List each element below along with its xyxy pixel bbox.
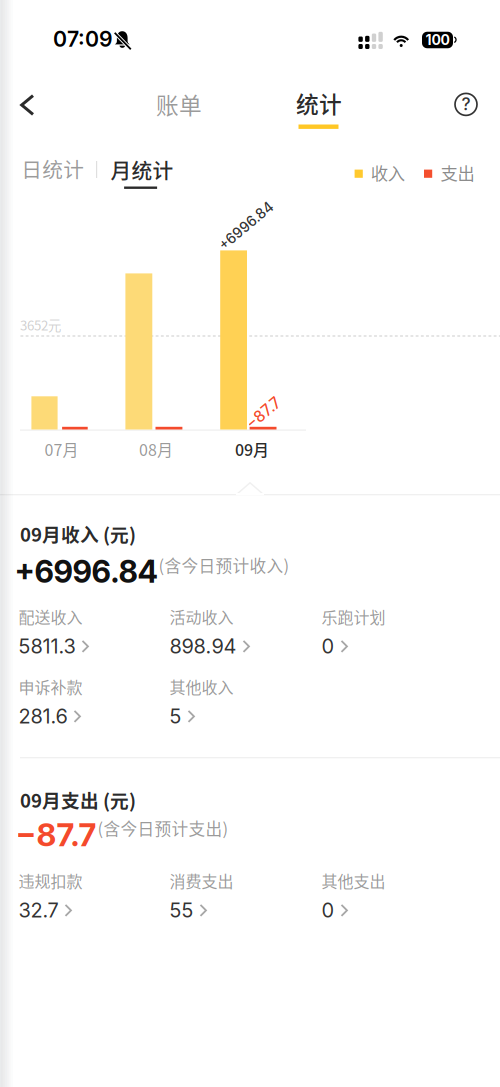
staticText: +6996.84 <box>213 217 279 234</box>
staticText: 申诉补款 <box>18 675 82 698</box>
staticText: 3652元 <box>20 315 61 334</box>
button[interactable]: 违规扣款 <box>18 869 160 923</box>
staticText: 收入 <box>371 160 405 185</box>
staticText: 其他收入 <box>169 675 233 698</box>
staticText: 55 <box>169 898 193 922</box>
staticText: 配送收入 <box>18 605 82 628</box>
staticText: (含今日预计支出) <box>97 816 228 840</box>
staticText: 09月支出 (元) <box>20 786 136 813</box>
staticText: 08月 <box>139 437 173 461</box>
button[interactable]: 活动收入 <box>169 605 311 659</box>
button[interactable]: 其他收入 <box>169 675 311 729</box>
button[interactable]: 其他支出 <box>321 869 463 923</box>
button[interactable]: Help <box>443 81 489 127</box>
staticText: 0 <box>321 634 334 658</box>
button[interactable]: 申诉补款 <box>18 675 160 729</box>
staticText: 09月 <box>235 437 269 461</box>
staticText: 281.6 <box>18 704 67 728</box>
button[interactable]: 日统计 <box>16 148 92 190</box>
staticText: 日统计 <box>21 153 84 183</box>
staticText: 898.94 <box>169 634 236 658</box>
button[interactable]: 统计 <box>280 81 360 139</box>
button[interactable]: 月统计 <box>103 148 179 198</box>
staticText: 07月 <box>44 437 78 461</box>
button[interactable]: Back <box>7 82 53 128</box>
button[interactable]: 乐跑计划 <box>321 605 463 659</box>
staticText: 100 <box>425 31 449 48</box>
staticText: +6996.84 <box>14 553 157 590</box>
staticText: 统计 <box>296 87 342 119</box>
staticText: 活动收入 <box>169 605 233 628</box>
staticText: 支出 <box>440 160 474 185</box>
staticText: 32.7 <box>18 898 58 922</box>
staticText: (含今日预计收入) <box>158 553 289 577</box>
staticText: −87.7 <box>15 816 96 854</box>
button[interactable]: 账单 <box>142 81 218 129</box>
staticText: 消费支出 <box>169 869 233 892</box>
staticText: 0 <box>321 898 334 922</box>
staticText: 09月收入 (元) <box>20 520 136 547</box>
staticText: 其他支出 <box>321 869 385 892</box>
staticText: 5811.3 <box>18 634 75 658</box>
staticText: 账单 <box>156 88 202 120</box>
staticText: −87.7 <box>243 404 283 422</box>
staticText: 月统计 <box>111 154 174 184</box>
staticText: 07:09 <box>53 26 113 52</box>
button[interactable]: 消费支出 <box>169 869 311 923</box>
staticText: 5 <box>169 704 181 728</box>
staticText: 违规扣款 <box>18 869 82 892</box>
staticText: 乐跑计划 <box>321 605 385 628</box>
staticText: ? <box>461 93 470 114</box>
button[interactable]: 配送收入 <box>18 605 160 659</box>
